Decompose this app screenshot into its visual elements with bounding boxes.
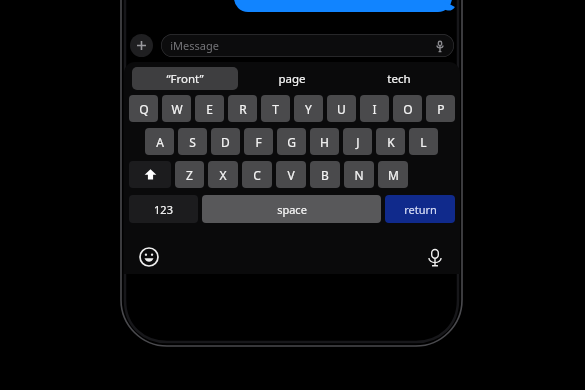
staticText: I [372, 101, 377, 117]
staticText: B [321, 167, 329, 183]
button[interactable]: D [211, 128, 240, 155]
button[interactable]: Shift [129, 161, 171, 188]
staticText: J [356, 134, 360, 150]
button[interactable]: A [145, 128, 174, 155]
button[interactable]: space [202, 195, 381, 223]
staticText: page [278, 71, 306, 87]
staticText: P [437, 101, 445, 117]
staticText: N [354, 167, 364, 183]
staticText: Z [186, 167, 193, 183]
button[interactable]: R [228, 95, 257, 122]
button[interactable]: B [310, 161, 340, 188]
staticText: Q [139, 101, 149, 117]
staticText: G [287, 134, 296, 150]
button[interactable]: W [162, 95, 191, 122]
button[interactable]: N [344, 161, 374, 188]
staticText: A [156, 134, 164, 150]
staticText: F [255, 134, 262, 150]
button[interactable]: Y [294, 95, 323, 122]
staticText: S [189, 134, 196, 150]
button[interactable]: Q [129, 95, 158, 122]
staticText: M [388, 167, 399, 183]
button[interactable]: page [238, 67, 345, 90]
staticText: 123 [154, 202, 173, 217]
button[interactable]: iMessage [161, 34, 454, 57]
staticText: R [239, 101, 247, 117]
button[interactable]: J [343, 128, 372, 155]
button[interactable]: T [261, 95, 290, 122]
button[interactable]: M [378, 161, 408, 188]
button[interactable]: Dictate [433, 39, 447, 53]
staticText: X [219, 167, 227, 183]
staticText: V [287, 167, 295, 183]
staticText: return [404, 202, 437, 217]
staticText: space [277, 202, 307, 217]
button[interactable]: head (this is really old obv) [234, 0, 452, 12]
button[interactable]: L [409, 128, 438, 155]
staticText: W [171, 101, 183, 117]
button[interactable]: X [208, 161, 238, 188]
staticText: C [253, 167, 261, 183]
staticText: Y [305, 101, 312, 117]
button[interactable]: tech [345, 67, 452, 90]
button[interactable]: K [376, 128, 405, 155]
button[interactable]: V [276, 161, 306, 188]
staticText: L [420, 134, 427, 150]
button[interactable]: Dictation [424, 246, 446, 268]
staticText: O [403, 101, 413, 117]
button[interactable]: return [385, 195, 455, 223]
button[interactable]: O [393, 95, 422, 122]
staticText: E [206, 101, 213, 117]
button[interactable]: Z [175, 161, 204, 188]
button[interactable]: I [360, 95, 389, 122]
button[interactable]: F [244, 128, 273, 155]
button[interactable]: “Front” [132, 67, 238, 90]
staticText: U [337, 101, 346, 117]
button[interactable]: Add attachment [130, 34, 153, 57]
staticText: T [272, 101, 279, 117]
button[interactable]: Emoji keyboard [138, 246, 160, 268]
button[interactable]: G [277, 128, 306, 155]
staticText: tech [387, 71, 411, 87]
staticText: H [320, 134, 329, 150]
staticText: iMessage [170, 38, 219, 53]
button[interactable]: 123 [129, 195, 198, 223]
button[interactable]: P [426, 95, 455, 122]
staticText: D [221, 134, 230, 150]
staticText: “Front” [166, 71, 204, 87]
button[interactable]: C [242, 161, 272, 188]
button[interactable]: H [310, 128, 339, 155]
staticText: K [387, 134, 395, 150]
button[interactable]: U [327, 95, 356, 122]
button[interactable]: E [195, 95, 224, 122]
button[interactable]: S [178, 128, 207, 155]
